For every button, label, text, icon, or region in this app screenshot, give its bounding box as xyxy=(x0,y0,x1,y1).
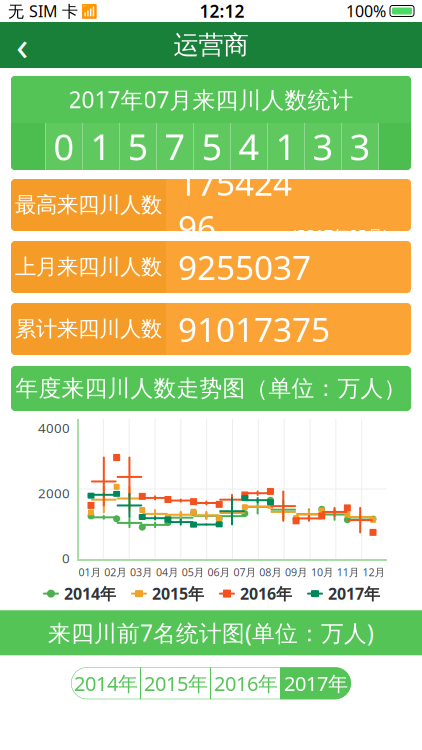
staticText: 来四川前7名统计图(单位：万人) xyxy=(48,618,374,648)
staticText: 无 SIM 卡 xyxy=(8,0,78,22)
staticText: 5 xyxy=(201,123,222,170)
button[interactable]: 2014年 xyxy=(71,667,141,699)
staticText: 最高来四川人数 xyxy=(15,192,162,218)
staticText: 0 xyxy=(53,123,74,170)
staticText: 10月 xyxy=(311,565,334,579)
staticText: 5 xyxy=(127,123,148,170)
staticText: 2016年 xyxy=(240,583,292,604)
staticText: 1 xyxy=(275,123,296,170)
staticText: 📶 xyxy=(78,2,98,20)
staticText: 2015年 xyxy=(144,670,208,697)
staticText: ‹ xyxy=(16,18,28,71)
staticText: 17542496 xyxy=(178,161,292,249)
staticText: 07月 xyxy=(233,565,256,579)
staticText: 2017年 xyxy=(284,670,348,697)
staticText: 2014年 xyxy=(74,670,138,697)
staticText: 05月 xyxy=(182,565,205,579)
staticText: 2015年 xyxy=(152,583,204,604)
staticText: 1 xyxy=(90,123,111,170)
staticText: 91017375 xyxy=(178,307,330,351)
staticText: 运营商 xyxy=(173,29,248,60)
staticText: 06月 xyxy=(208,565,231,579)
staticText: 12:12 xyxy=(199,0,244,22)
staticText: 年度来四川人数走势图（单位：万人） xyxy=(15,375,406,402)
staticText: 2017年 xyxy=(328,583,380,604)
staticText: 01月 xyxy=(78,565,101,579)
staticText: 0 xyxy=(62,549,70,567)
staticText: 7 xyxy=(164,123,185,170)
staticText: 上月来四川人数 xyxy=(15,254,162,280)
staticText: 9255037 xyxy=(178,245,311,289)
staticText: 2000 xyxy=(38,484,70,502)
staticText: 累计来四川人数 xyxy=(15,316,162,342)
staticText: 04月 xyxy=(156,565,179,579)
staticText: (2017年02月) xyxy=(292,225,388,246)
staticText: 12月 xyxy=(363,565,386,579)
button[interactable]: 2016年 xyxy=(211,667,281,699)
staticText: 2016年 xyxy=(214,670,278,697)
staticText: 3 xyxy=(349,123,370,170)
staticText: 100% xyxy=(346,0,386,22)
staticText: 08月 xyxy=(259,565,282,579)
staticText: 4 xyxy=(238,123,259,170)
staticText: 4000 xyxy=(38,419,70,437)
staticText: 02月 xyxy=(104,565,127,579)
staticText: 09月 xyxy=(285,565,308,579)
button[interactable]: 2017年 xyxy=(281,667,351,699)
button[interactable]: 2015年 xyxy=(141,667,211,699)
staticText: 2017年07月来四川人数统计 xyxy=(68,84,353,114)
staticText: 2014年 xyxy=(64,583,116,604)
staticText: 03月 xyxy=(130,565,153,579)
button[interactable]: Back xyxy=(0,23,44,67)
staticText: 11月 xyxy=(337,565,360,579)
staticText: 3 xyxy=(312,123,333,170)
